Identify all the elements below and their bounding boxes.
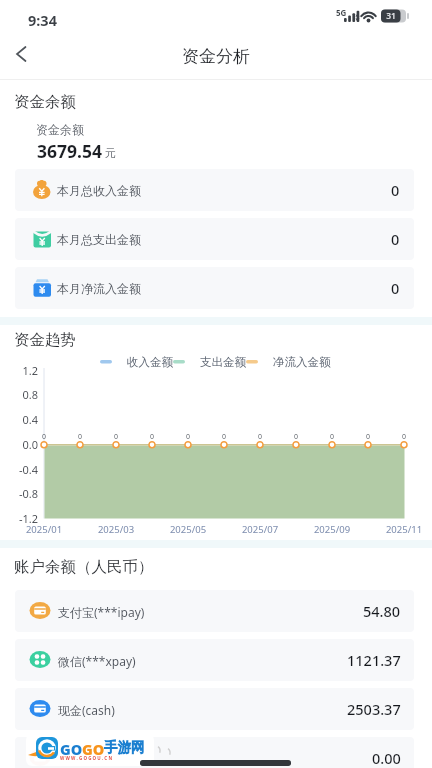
staticText: 2503.37: [347, 699, 401, 719]
staticText: 5G: [336, 7, 347, 18]
staticText: 0: [178, 432, 198, 442]
button[interactable]: 支付宝(***ipay): [15, 590, 414, 632]
staticText: 0: [391, 180, 400, 200]
staticText: 0: [34, 432, 54, 442]
staticText: 1.2: [0, 363, 38, 378]
staticText: -0.8: [0, 486, 38, 501]
staticText: 支出金额: [200, 355, 246, 369]
staticText: 本月净流入金额: [57, 281, 141, 296]
button[interactable]: 0.00: [15, 737, 414, 768]
staticText: W W W . G O G O U . C N: [60, 755, 113, 761]
staticText: 资金分析: [0, 46, 432, 67]
staticText: -1.2: [0, 511, 38, 526]
staticText: 0: [394, 432, 414, 442]
staticText: 资金趋势: [14, 330, 76, 350]
staticText: 54.80: [363, 601, 401, 621]
staticText: 2025/07: [230, 523, 290, 536]
staticText: GO: [60, 739, 83, 759]
staticText: 净流入金额: [273, 355, 331, 369]
staticText: 2025/11: [374, 523, 432, 536]
staticText: 2025/05: [158, 523, 218, 536]
staticText: 资金余额: [36, 122, 84, 137]
staticText: 0.00: [372, 748, 401, 768]
staticText: 1121.37: [347, 650, 401, 670]
staticText: 0: [250, 432, 270, 442]
staticText: 2025/01: [14, 523, 74, 536]
staticText: 0.8: [0, 387, 38, 402]
button[interactable]: 微信(***xpay): [15, 639, 414, 681]
staticText: 资金余额: [14, 92, 76, 112]
staticText: 2025/03: [86, 523, 146, 536]
staticText: GO: [82, 739, 105, 759]
staticText: 0.4: [0, 412, 38, 427]
staticText: 0: [391, 229, 400, 249]
staticText: 0: [322, 432, 342, 442]
button[interactable]: 现金(cash): [15, 688, 414, 730]
staticText: 本月总支出金额: [57, 232, 141, 247]
staticText: 0: [391, 278, 400, 298]
staticText: 收入金额: [127, 355, 173, 369]
staticText: -0.4: [0, 462, 38, 477]
button[interactable]: 本月净流入金额: [15, 267, 414, 309]
staticText: 手游网: [104, 739, 145, 756]
staticText: 0: [286, 432, 306, 442]
staticText: 31: [382, 10, 400, 22]
staticText: 账户余额（人民币）: [14, 557, 154, 577]
button[interactable]: 本月总收入金额: [15, 169, 414, 211]
staticText: 本月总收入金额: [57, 183, 141, 198]
staticText: 现金(cash): [58, 702, 115, 718]
staticText: 0: [358, 432, 378, 442]
staticText: 9:34: [28, 10, 57, 30]
staticText: 0: [106, 432, 126, 442]
staticText: 0: [70, 432, 90, 442]
button[interactable]: [8, 44, 32, 64]
staticText: 3679.54: [37, 139, 102, 163]
staticText: 0: [142, 432, 162, 442]
staticText: 0: [214, 432, 234, 442]
staticText: 元: [105, 146, 116, 160]
staticText: 2025/09: [302, 523, 362, 536]
staticText: 微信(***xpay): [58, 653, 136, 669]
staticText: 0.0: [0, 437, 38, 452]
staticText: 支付宝(***ipay): [58, 604, 145, 620]
button[interactable]: 本月总支出金额: [15, 218, 414, 260]
